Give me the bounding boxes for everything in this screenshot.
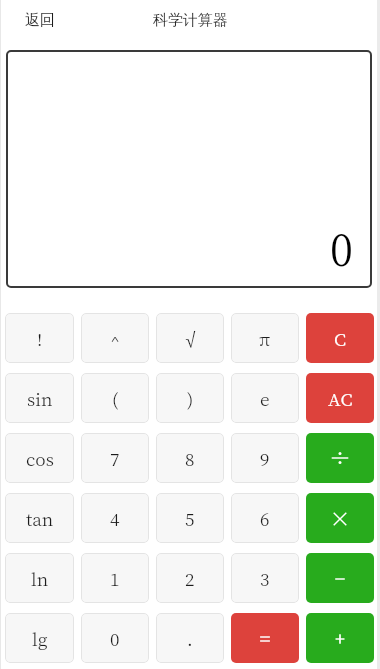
button[interactable]: ^ (81, 313, 149, 363)
staticText: 1 (110, 567, 120, 590)
staticText: ^ (110, 327, 121, 350)
button[interactable]: cos (5, 433, 74, 483)
staticText: √ (185, 327, 196, 350)
button[interactable]: lg (5, 613, 74, 663)
staticText: sin (27, 387, 53, 410)
button[interactable]: 7 (81, 433, 149, 483)
staticText: 7 (110, 447, 120, 470)
button[interactable]: π (231, 313, 299, 363)
staticText: π (259, 327, 271, 350)
button[interactable]: ln (5, 553, 74, 603)
staticText: 8 (185, 447, 195, 470)
staticText: 5 (185, 507, 195, 530)
button[interactable]: sin (5, 373, 74, 423)
button[interactable]: ) (156, 373, 224, 423)
button[interactable]: 2 (156, 553, 224, 603)
button[interactable]: √ (156, 313, 224, 363)
button[interactable]: tan (5, 493, 74, 543)
staticText: 科学计算器 (153, 11, 228, 30)
staticText: ) (187, 387, 194, 410)
button[interactable]: 返回 (25, 11, 55, 30)
staticText: ln (31, 567, 49, 590)
staticText: 4 (110, 507, 120, 530)
button[interactable]: 5 (156, 493, 224, 543)
button[interactable]: 9 (231, 433, 299, 483)
staticText: 0 (330, 220, 353, 276)
staticText: 3 (260, 567, 270, 590)
staticText: AC (328, 387, 353, 410)
staticText: tan (26, 507, 54, 530)
staticText: ! (37, 327, 43, 350)
button[interactable]: ! (5, 313, 74, 363)
staticText: 6 (260, 507, 270, 530)
button[interactable] (306, 493, 374, 543)
staticText: C (334, 327, 347, 350)
button[interactable]: e (231, 373, 299, 423)
button[interactable] (306, 613, 374, 663)
button[interactable]: 3 (231, 553, 299, 603)
button[interactable]: 4 (81, 493, 149, 543)
staticText: 2 (185, 567, 195, 590)
button[interactable] (231, 613, 299, 663)
button[interactable]: 0 (81, 613, 149, 663)
button[interactable]: 1 (81, 553, 149, 603)
button[interactable] (306, 433, 374, 483)
button[interactable]: C (306, 313, 374, 363)
staticText: 0 (110, 627, 120, 650)
staticText: ( (112, 387, 119, 410)
button[interactable]: 6 (231, 493, 299, 543)
staticText: cos (26, 447, 54, 470)
button[interactable]: AC (306, 373, 374, 423)
staticText: . (187, 627, 193, 650)
staticText: 返回 (25, 11, 55, 30)
staticText: e (260, 387, 270, 410)
button[interactable]: . (156, 613, 224, 663)
staticText: lg (32, 627, 48, 650)
staticText: 9 (260, 447, 270, 470)
button[interactable]: 8 (156, 433, 224, 483)
button[interactable] (306, 553, 374, 603)
button[interactable]: ( (81, 373, 149, 423)
